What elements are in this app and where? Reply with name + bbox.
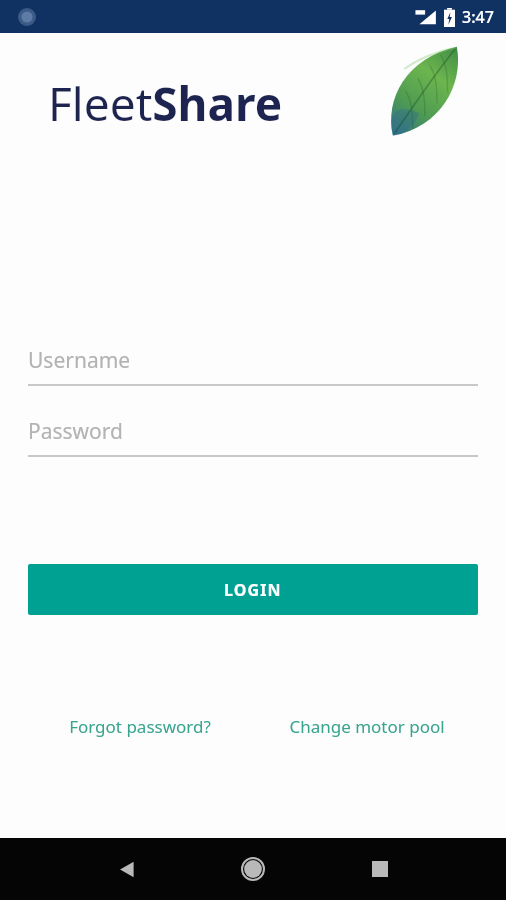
button[interactable]: Change motor pool [253, 715, 480, 738]
button[interactable]: Back [102, 845, 150, 893]
button[interactable]: Username [28, 346, 478, 386]
staticText: Change motor pool [289, 715, 445, 738]
staticText: LOGIN [224, 579, 282, 601]
button[interactable]: Password [28, 417, 478, 457]
button[interactable]: LOGIN [28, 564, 478, 615]
staticText: 3:47 [462, 6, 494, 28]
button[interactable]: Recent apps [356, 845, 404, 893]
staticText: Forgot password? [69, 715, 211, 738]
staticText: FleetShare [48, 72, 283, 135]
button[interactable]: Forgot password? [26, 715, 253, 738]
button[interactable]: Home [229, 845, 277, 893]
staticText: Username [28, 346, 131, 375]
staticText: Password [28, 417, 123, 446]
